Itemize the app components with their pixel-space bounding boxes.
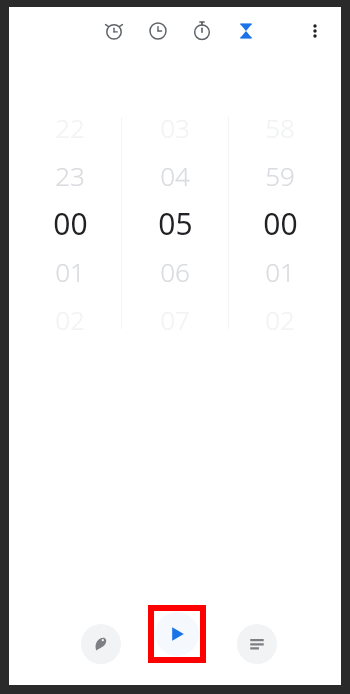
button[interactable]: Timer list [237, 624, 277, 664]
staticText: 06 [160, 254, 190, 289]
staticText: 01 [265, 254, 295, 289]
button[interactable]: Stopwatch [186, 15, 218, 47]
staticText: 23 [55, 158, 85, 193]
button[interactable]: Start timer [154, 611, 200, 657]
staticText: 00 [53, 203, 88, 244]
staticText: 02 [265, 302, 295, 337]
button[interactable]: 03 [127, 103, 223, 343]
staticText: 04 [160, 158, 190, 193]
staticText: 59 [265, 158, 295, 193]
staticText: 07 [160, 302, 190, 337]
button[interactable]: More options [299, 15, 331, 47]
staticText: 00 [263, 203, 298, 244]
button[interactable]: Clock [142, 15, 174, 47]
button[interactable]: 22 [22, 103, 118, 343]
staticText: 05 [158, 203, 193, 244]
button[interactable]: Add label [81, 624, 121, 664]
staticText: 02 [55, 302, 85, 337]
staticText: 03 [160, 110, 190, 145]
staticText: 22 [55, 110, 85, 145]
staticText: 01 [55, 254, 85, 289]
button[interactable]: 58 [232, 103, 328, 343]
button[interactable]: Timer [230, 15, 262, 47]
staticText: 58 [265, 110, 295, 145]
button[interactable]: Alarm [98, 15, 130, 47]
